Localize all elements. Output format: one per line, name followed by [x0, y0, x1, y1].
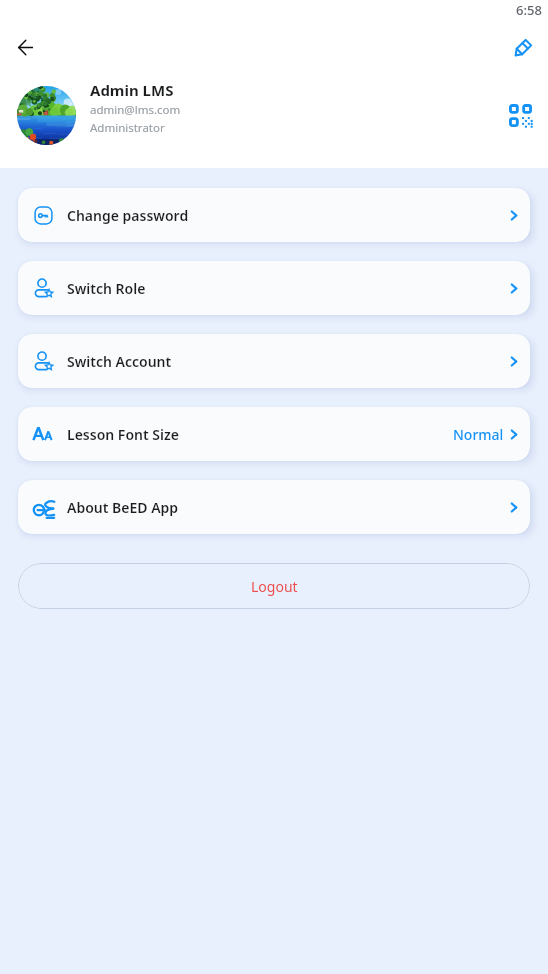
staticText: Admin LMS [90, 80, 174, 100]
staticText: About BeED App [67, 498, 179, 517]
staticText: Logout [251, 577, 298, 596]
staticText: Switch Account [67, 352, 172, 371]
button[interactable]: QR code [502, 97, 538, 133]
staticText: Change password [67, 206, 189, 225]
staticText: 6:58 [516, 1, 542, 19]
button[interactable]: Switch Account [18, 334, 530, 388]
staticText: Administrator [90, 120, 165, 136]
button[interactable]: Change password [18, 188, 530, 242]
button[interactable]: Back [7, 29, 43, 65]
staticText: Switch Role [67, 279, 146, 298]
button[interactable]: Lesson Font Size [18, 407, 530, 461]
button[interactable]: About BeED App [18, 480, 530, 534]
staticText: admin@lms.com [90, 102, 181, 118]
staticText: Lesson Font Size [67, 425, 179, 444]
button[interactable]: Switch Role [18, 261, 530, 315]
button[interactable]: Logout [18, 563, 530, 609]
button[interactable]: Edit profile [506, 29, 542, 65]
staticText: Normal [453, 425, 504, 444]
